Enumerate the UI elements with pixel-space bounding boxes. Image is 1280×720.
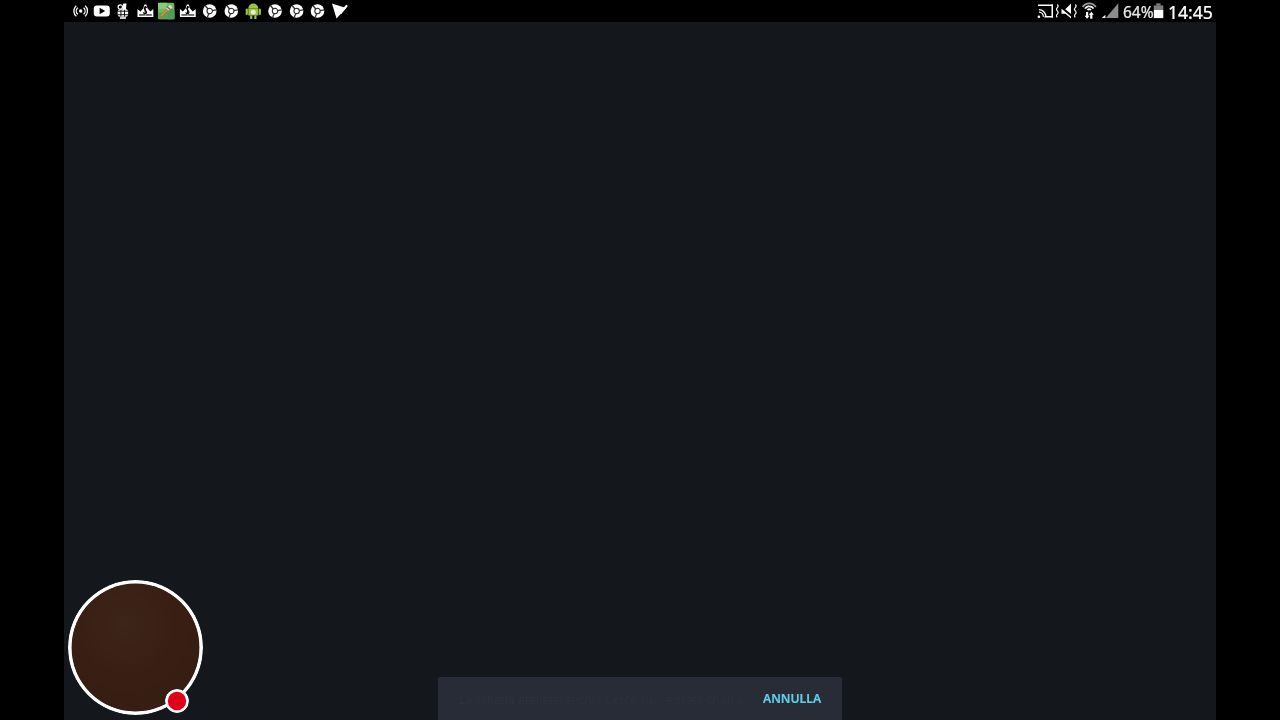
button[interactable]: ANNULLA xyxy=(763,690,822,707)
staticText: 14:45 xyxy=(1168,0,1213,22)
button[interactable]: La scheda atei eferenchi - Cerca su... e… xyxy=(438,677,842,720)
button[interactable]: Self view camera preview xyxy=(68,580,203,715)
button[interactable]: Stop recording xyxy=(165,689,189,713)
staticText: 64% xyxy=(1123,1,1154,22)
staticText: ANNULLA xyxy=(763,690,822,707)
